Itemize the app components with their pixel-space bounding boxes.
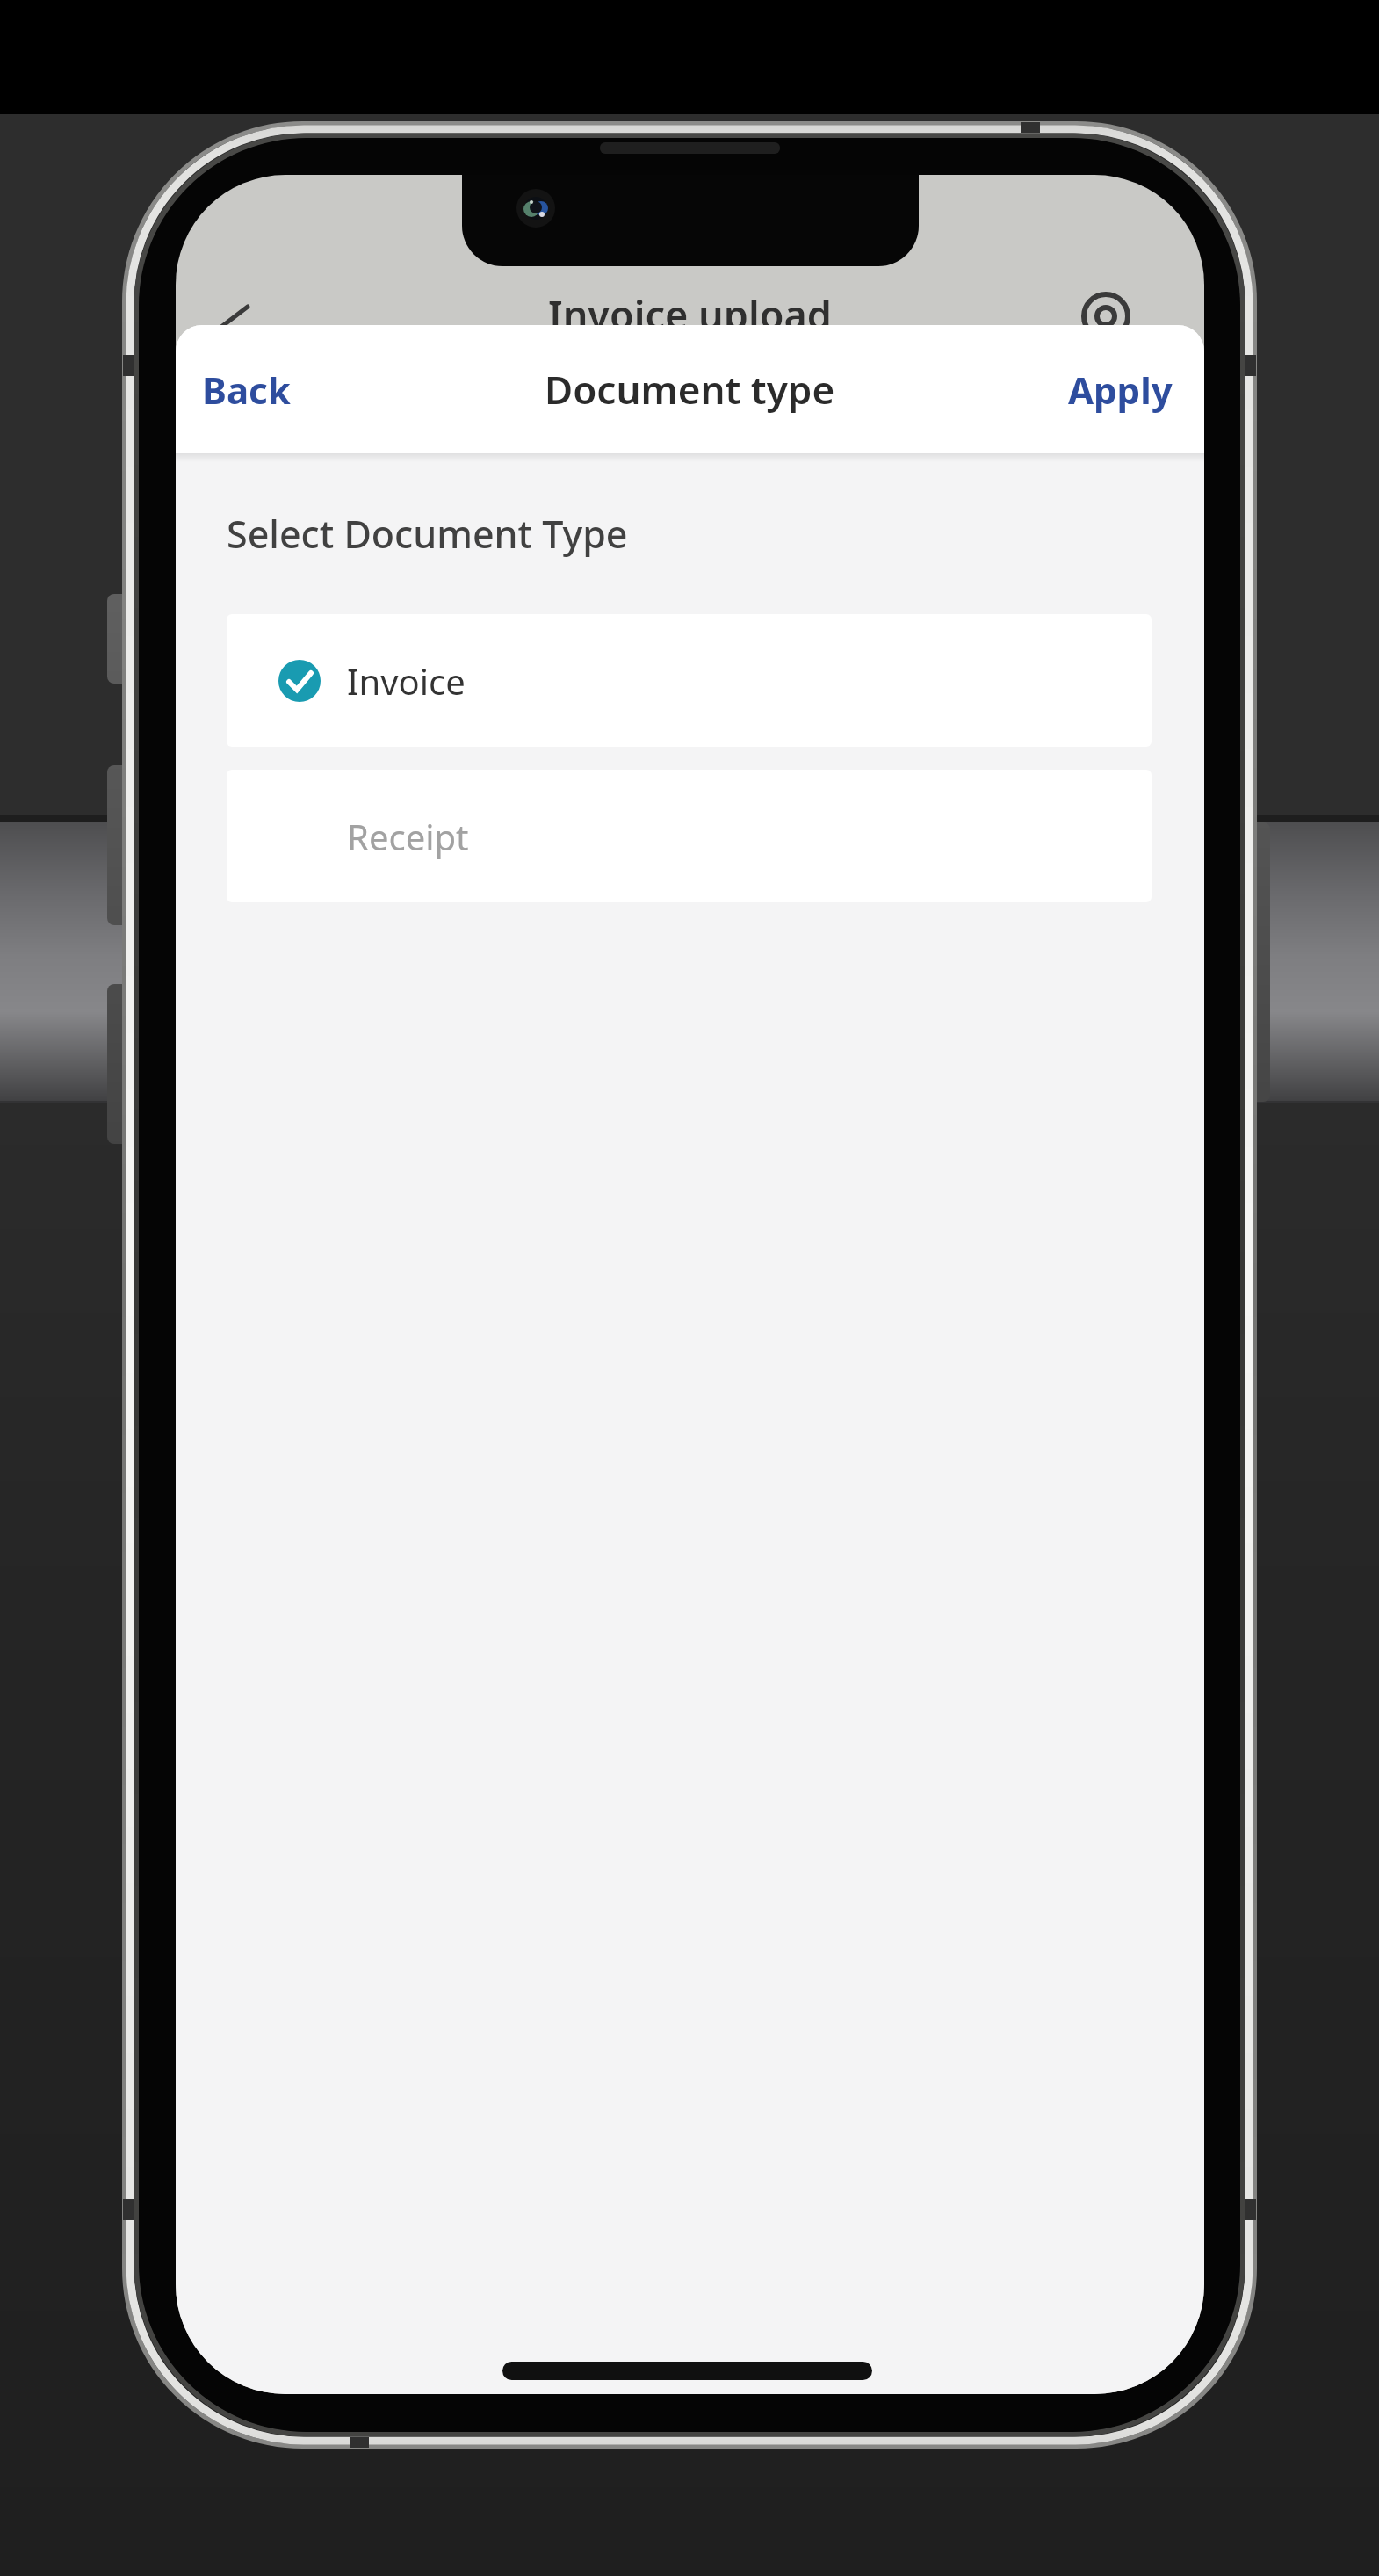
staticText: Invoice upload: [548, 287, 832, 341]
staticText: Document type: [545, 363, 835, 416]
button[interactable]: Receipt: [227, 770, 1152, 902]
button[interactable]: Back: [193, 356, 300, 423]
staticText: Select Document Type: [227, 508, 628, 560]
button[interactable]: Apply: [1059, 356, 1181, 423]
staticText: Invoice: [347, 657, 466, 705]
staticText: Apply: [1068, 365, 1173, 415]
button[interactable]: Invoice: [227, 614, 1152, 747]
staticText: Back: [202, 365, 291, 415]
staticText: Receipt: [347, 813, 469, 860]
